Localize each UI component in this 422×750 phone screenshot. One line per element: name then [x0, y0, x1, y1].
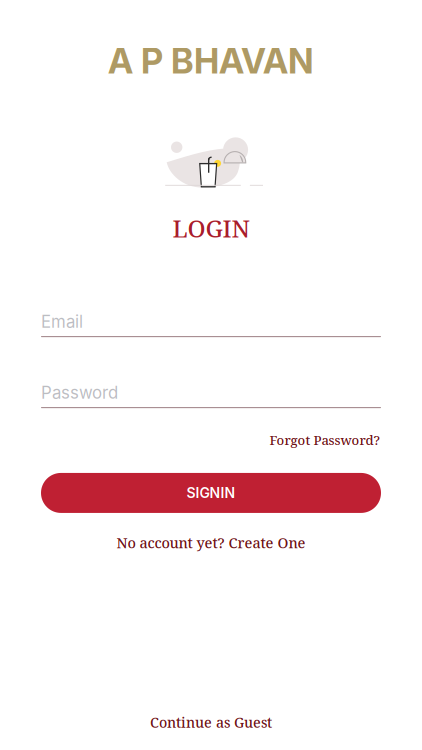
button[interactable]: Password — [41, 385, 381, 408]
button[interactable]: Continue as Guest — [150, 713, 272, 732]
button[interactable]: SIGNIN — [41, 473, 381, 513]
staticText: LOGIN — [172, 212, 249, 245]
button[interactable]: Forgot Password? — [269, 431, 379, 449]
staticText: No account yet? Create One — [116, 533, 305, 552]
staticText: Password — [41, 382, 118, 403]
staticText: A P BHAVAN — [108, 40, 314, 82]
button[interactable]: Email — [41, 314, 381, 337]
staticText: SIGNIN — [186, 484, 235, 501]
staticText: Email — [41, 311, 83, 332]
staticText: Forgot Password? — [269, 431, 379, 449]
staticText: Continue as Guest — [150, 713, 272, 732]
button[interactable]: No account yet? Create One — [116, 533, 305, 552]
